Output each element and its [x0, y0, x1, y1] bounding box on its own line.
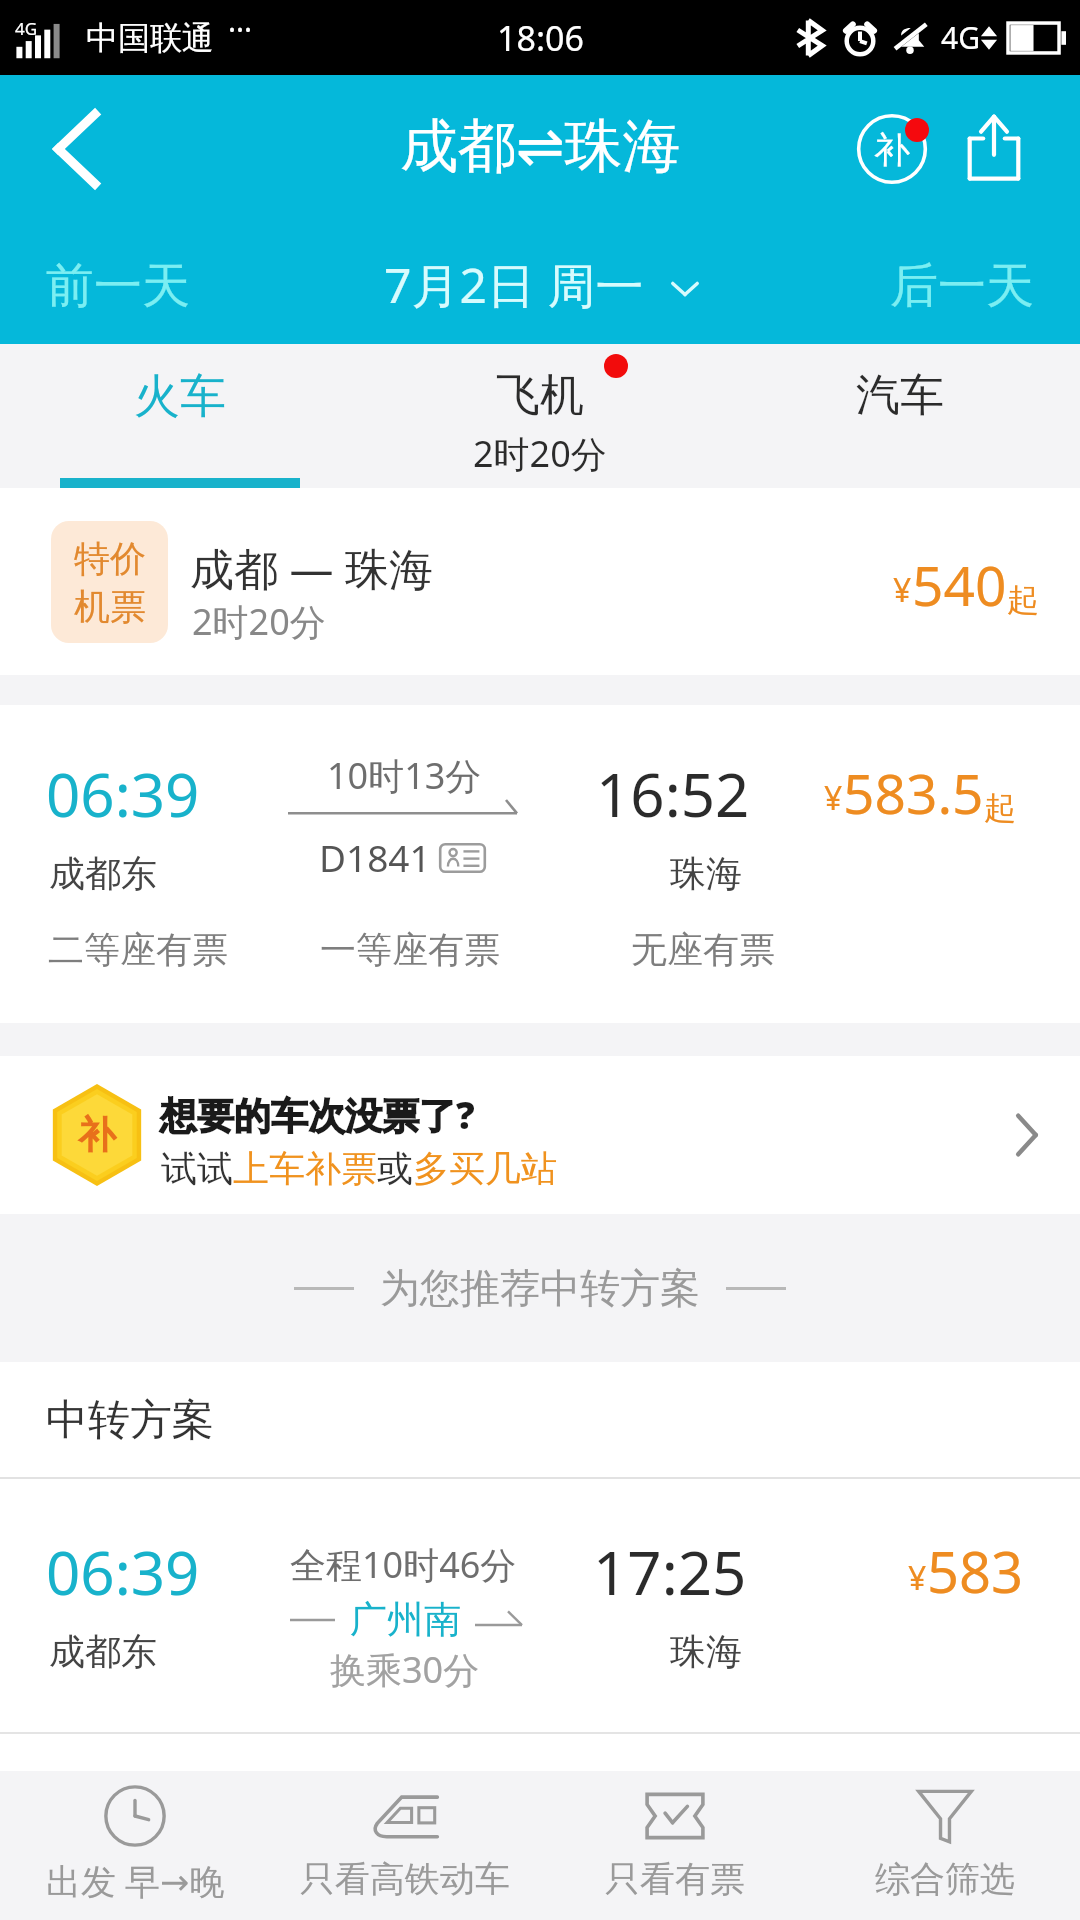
staticText: ···: [228, 9, 253, 50]
button[interactable]: 补票: [836, 98, 936, 198]
staticText: 补: [874, 127, 910, 172]
staticText: 4G: [941, 17, 980, 58]
button[interactable]: 汽车: [720, 344, 1080, 488]
staticText: 4G: [15, 17, 38, 40]
staticText: 成都 — 珠海: [190, 538, 433, 598]
staticText: 成都东: [49, 851, 157, 896]
staticText: 7月2日 周一: [384, 252, 644, 318]
staticText: 起: [984, 788, 1016, 828]
button[interactable]: Share: [944, 98, 1044, 198]
button[interactable]: 前一天: [0, 242, 214, 330]
button[interactable]: Back: [0, 75, 148, 215]
staticText: 只看有票: [605, 1857, 745, 1901]
staticText: 无座有票: [631, 927, 775, 972]
staticText: 06:39: [46, 1531, 200, 1613]
staticText: 583: [927, 1533, 1024, 1609]
staticText: 17:25: [593, 1531, 747, 1613]
staticText: 2时20分: [192, 597, 326, 646]
staticText: 540: [912, 547, 1007, 622]
button[interactable]: 出发 早→晚: [0, 1771, 270, 1920]
staticText: 或: [377, 1146, 413, 1191]
staticText: 机票: [74, 584, 146, 629]
button[interactable]: 后一天: [866, 242, 1080, 330]
staticText: 中转方案: [46, 1394, 214, 1447]
staticText: 成都⇌珠海: [400, 110, 681, 183]
staticText: 火车: [134, 368, 226, 426]
button[interactable]: 只看有票: [540, 1771, 810, 1920]
staticText: D1841: [319, 832, 431, 882]
staticText: 换乘30分: [330, 1645, 480, 1694]
staticText: 前一天: [46, 256, 190, 316]
staticText: 后一天: [890, 256, 1034, 316]
button[interactable]: 飞机: [360, 344, 720, 488]
staticText: 583.5: [843, 755, 984, 830]
staticText: 中国联通: [86, 18, 214, 58]
staticText: 多买几站: [413, 1146, 557, 1191]
staticText: 二等座有票: [48, 927, 228, 972]
button[interactable]: 火车: [0, 344, 360, 488]
staticText: 珠海: [670, 1629, 742, 1674]
staticText: ¥: [824, 776, 843, 820]
staticText: 上车补票: [233, 1146, 377, 1191]
button[interactable]: 06:39: [0, 1479, 1080, 1735]
staticText: 飞机: [496, 368, 584, 423]
button[interactable]: 综合筛选: [810, 1771, 1080, 1920]
staticText: ¥: [908, 1556, 927, 1600]
staticText: 全程10时46分: [290, 1540, 517, 1589]
staticText: 18:06: [497, 15, 584, 61]
staticText: 特价: [74, 536, 146, 581]
button[interactable]: 7月2日 周一: [374, 242, 708, 328]
staticText: 综合筛选: [875, 1857, 1015, 1901]
staticText: 06:39: [46, 753, 200, 835]
staticText: 起: [1007, 580, 1039, 620]
staticText: 10时13分: [327, 751, 482, 800]
staticText: 成都东: [49, 1629, 157, 1674]
staticText: 试试: [161, 1146, 233, 1191]
button[interactable]: 特价: [0, 488, 1080, 675]
staticText: 出发 早→晚: [46, 1857, 225, 1905]
staticText: 为您推荐中转方案: [380, 1263, 700, 1313]
button[interactable]: 06:39: [0, 705, 1080, 1023]
button[interactable]: 补: [0, 1056, 1080, 1214]
staticText: ¥: [893, 568, 912, 612]
staticText: 补: [78, 1111, 116, 1159]
staticText: 珠海: [670, 851, 742, 896]
staticText: 广州南: [350, 1596, 461, 1643]
staticText: 只看高铁动车: [300, 1857, 510, 1901]
staticText: 汽车: [856, 368, 944, 423]
button[interactable]: 只看高铁动车: [270, 1771, 540, 1920]
staticText: 一等座有票: [320, 927, 500, 972]
staticText: 想要的车次没票了?: [160, 1089, 475, 1140]
staticText: 16:52: [596, 753, 750, 835]
staticText: 2时20分: [473, 429, 607, 478]
